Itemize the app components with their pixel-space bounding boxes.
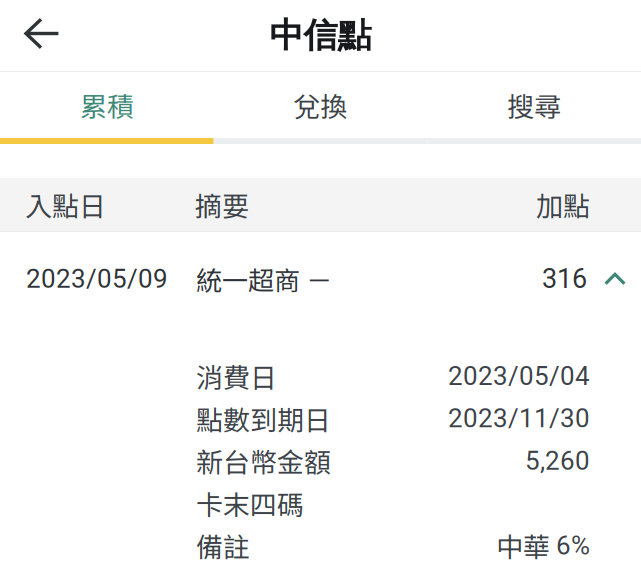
button[interactable]: 2023/05/09 <box>0 232 641 355</box>
staticText: 2023/05/04 <box>448 361 590 391</box>
staticText: 摘要 <box>195 185 249 224</box>
staticText: 新台幣金額 <box>196 441 331 480</box>
button[interactable]: 搜尋 <box>427 72 641 138</box>
staticText: 中信點 <box>269 14 371 57</box>
staticText: 卡末四碼 <box>196 484 304 523</box>
staticText: 備註 <box>196 526 250 565</box>
button[interactable]: Back <box>0 0 76 71</box>
staticText: 2023/05/09 <box>26 264 168 294</box>
staticText: 消費日 <box>196 356 277 396</box>
button[interactable]: 累積 <box>0 72 214 138</box>
staticText: 加點 <box>536 185 590 224</box>
staticText: 統一超商 － <box>196 260 332 298</box>
staticText: 2023/11/30 <box>448 403 590 434</box>
button[interactable]: 兌換 <box>214 72 427 138</box>
staticText: 6% <box>556 530 590 561</box>
staticText: 搜尋 <box>507 85 561 125</box>
staticText: 兌換 <box>293 85 347 125</box>
staticText: 316 <box>542 263 587 295</box>
staticText: 點數到期日 <box>196 399 331 438</box>
staticText: 5,260 <box>525 446 590 476</box>
staticText: 累積 <box>80 85 134 125</box>
staticText: 入點日 <box>25 185 106 224</box>
staticText: 中華 <box>496 526 556 565</box>
